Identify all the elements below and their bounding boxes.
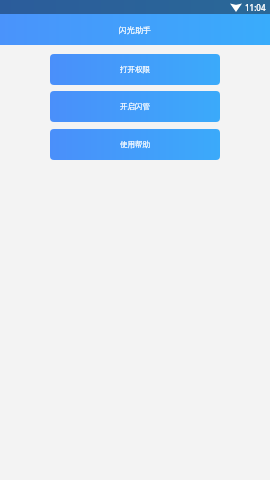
staticText: 11:04 bbox=[245, 2, 266, 13]
button[interactable]: 打开权限 bbox=[50, 54, 220, 85]
button[interactable]: 使用帮助 bbox=[50, 129, 220, 160]
staticText: 打开权限 bbox=[120, 65, 150, 74]
staticText: 使用帮助 bbox=[120, 140, 150, 149]
button[interactable]: 开启闪管 bbox=[50, 91, 220, 122]
staticText: 开启闪管 bbox=[120, 102, 150, 111]
other: Wi-Fi signal bbox=[230, 3, 242, 12]
staticText: 闪光助手 bbox=[119, 25, 151, 35]
